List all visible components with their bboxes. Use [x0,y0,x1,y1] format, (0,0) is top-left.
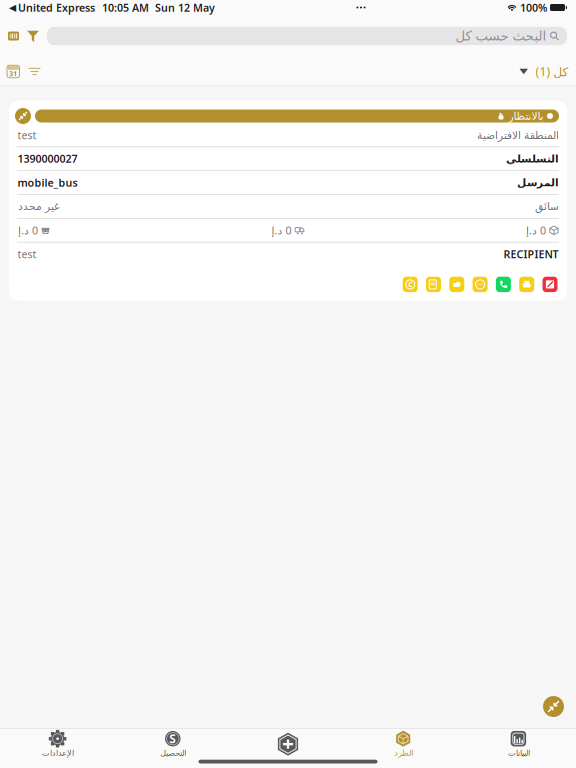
button[interactable]: Action [473,277,488,292]
staticText: 100% [520,0,547,15]
staticText: RECIPIENT [503,247,558,261]
staticText: United Express [18,0,95,15]
staticText: 10:05 AM [102,0,149,15]
button[interactable]: Date range [7,65,19,78]
staticText: كل (1) [535,63,568,79]
button[interactable]: Action [426,277,441,292]
staticText: بالانتظار [508,110,543,122]
button[interactable]: البحث حسب كل [47,27,567,45]
staticText: الطرد [394,748,413,758]
staticText: المرسل [516,176,558,189]
staticText: غير محدد [17,200,59,212]
staticText: mobile_bus [17,175,77,190]
staticText: ◀ [9,2,16,13]
staticText: 0 د.إ [525,223,545,237]
button[interactable]: الطرد [346,731,461,758]
button[interactable]: Action [519,277,534,292]
button[interactable]: Action [496,277,511,292]
button[interactable]: Action [403,277,418,292]
button[interactable]: Action [542,277,557,292]
staticText: التحصيل [160,748,186,758]
button[interactable]: Sort [28,66,40,77]
staticText: 31 [9,69,17,78]
staticText: الإعدادات [42,748,74,758]
staticText: 1390000027 [17,152,77,166]
button[interactable]: Collapse all [543,696,564,717]
button[interactable]: الإعدادات [0,731,115,758]
button[interactable]: S [115,731,230,758]
staticText: 0 د.إ [271,223,291,237]
button[interactable]: Scan barcode [8,31,19,40]
staticText: Sun 12 May [155,0,215,15]
staticText: البيانات [507,748,529,758]
button[interactable]: كل (1) [519,63,568,79]
staticText: test [17,247,36,261]
staticText: S [169,731,176,747]
button[interactable] [230,736,346,752]
staticText: المنطقة الافتراضية [476,129,558,141]
staticText: البحث حسب كل [455,28,546,43]
staticText: التسلسلي [505,153,558,165]
button[interactable]: Action [449,277,464,292]
button[interactable]: Filter [27,30,39,42]
button[interactable]: بالانتظار [35,109,559,122]
button[interactable]: البيانات [461,731,576,758]
button[interactable]: Collapse [15,108,31,124]
staticText: 0 د.إ [17,223,37,237]
staticText: C [408,280,412,289]
staticText: test [17,128,36,142]
staticText: سائق [534,200,558,212]
